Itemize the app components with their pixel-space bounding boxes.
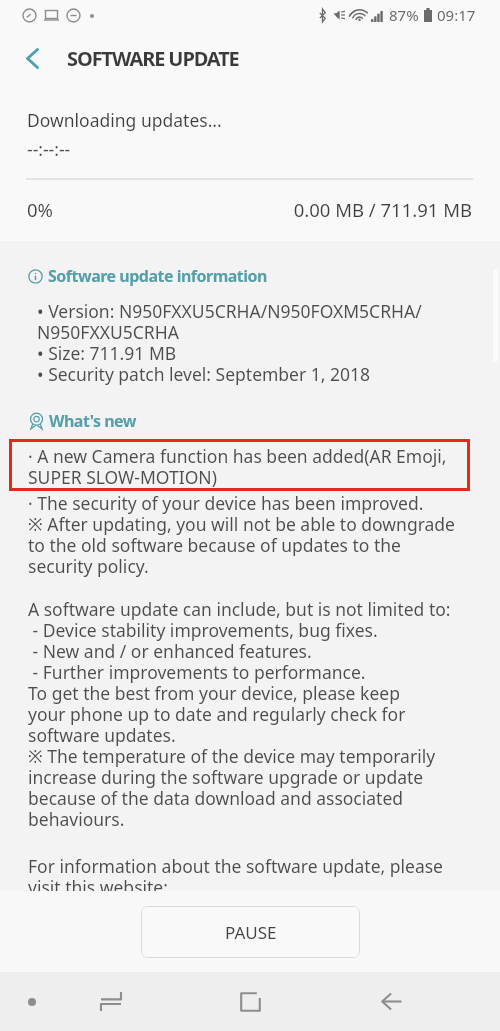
staticText: 09:17 — [437, 5, 476, 25]
staticText: What's new — [49, 410, 137, 432]
staticText: For information about the software updat… — [28, 854, 443, 891]
staticText: Software update information — [48, 265, 267, 287]
staticText: A software update can include, but is no… — [28, 597, 451, 831]
staticText: Downloading updates... — [27, 108, 222, 132]
button[interactable]: Back — [359, 972, 423, 1031]
staticText: --:--:-- — [27, 137, 71, 161]
staticText: • Version: N950FXXU5CRHA/N950FOXM5CRHA/ … — [37, 299, 422, 386]
staticText: PAUSE — [225, 921, 277, 944]
button[interactable]: Menu — [6, 972, 58, 1031]
button[interactable]: Recent apps — [79, 972, 143, 1031]
staticText: 87% — [389, 5, 419, 25]
staticText: SOFTWARE UPDATE — [67, 45, 239, 72]
button[interactable]: Home — [218, 972, 283, 1031]
staticText: · A new Camera function has been added(A… — [28, 444, 447, 489]
staticText: 0.00 MB / 711.91 MB — [0, 197, 472, 222]
button[interactable]: Back — [8, 34, 56, 82]
staticText: · The security of your device has been i… — [28, 491, 455, 578]
staticText: 0% — [27, 197, 53, 222]
button[interactable]: PAUSE — [141, 906, 360, 958]
